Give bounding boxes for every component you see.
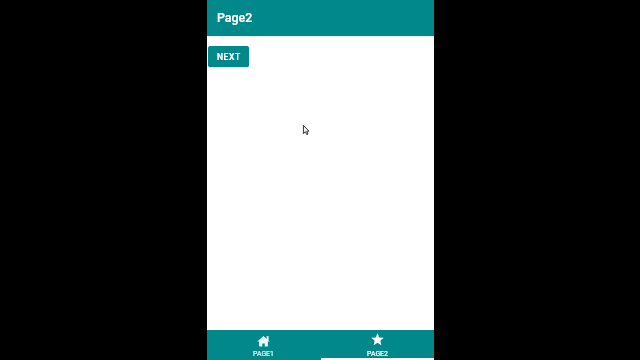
button[interactable]: Page 1 <box>207 330 320 360</box>
staticText: NEXT <box>217 52 241 62</box>
button[interactable]: NEXT <box>208 46 249 67</box>
staticText: PAGE2 <box>367 350 388 358</box>
button[interactable]: Page 2 <box>320 330 434 360</box>
other: Page 1 <box>256 334 271 349</box>
staticText: Page2 <box>217 10 253 25</box>
staticText: PAGE1 <box>253 350 274 358</box>
other: Page 2 <box>370 332 385 347</box>
